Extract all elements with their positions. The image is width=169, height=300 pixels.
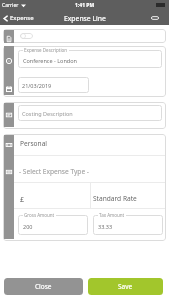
staticText: Conference - London [23,57,77,64]
staticText: Expense Description [24,47,68,53]
staticText: Expense Line [64,14,106,23]
staticText: Expense [10,14,34,22]
staticText: Personal [20,139,48,148]
button[interactable]: Toggle [20,33,33,39]
button[interactable]: Personal [20,139,48,148]
staticText: £ [20,194,25,203]
staticText: Standard Rate [93,194,137,203]
staticText: Close [35,282,52,291]
staticText: 1:41 PM [75,2,95,9]
staticText: Gross Amount [24,212,55,218]
staticText: 200 [23,223,33,230]
button[interactable]: Attach file [147,11,163,25]
staticText: Tax Amount [99,212,125,218]
button[interactable]: Expense [0,11,38,25]
staticText: 33.33 [98,223,113,230]
staticText: Save [118,282,133,291]
button[interactable]: Costing Description [18,105,162,121]
button[interactable]: Save [88,278,163,295]
staticText: Carrier [2,2,19,9]
staticText: - Select Expense Type - [19,167,89,176]
button[interactable]: Expense Description [18,50,162,68]
button[interactable]: Gross Amount [18,215,88,235]
button[interactable]: - Select Expense Type - [19,167,89,176]
staticText: Costing Description [22,110,73,117]
button[interactable]: 21/03/2019 [18,77,89,93]
button[interactable]: Tax Amount [93,215,163,235]
staticText: 21/03/2019 [22,82,52,89]
button[interactable]: Close [4,278,83,295]
